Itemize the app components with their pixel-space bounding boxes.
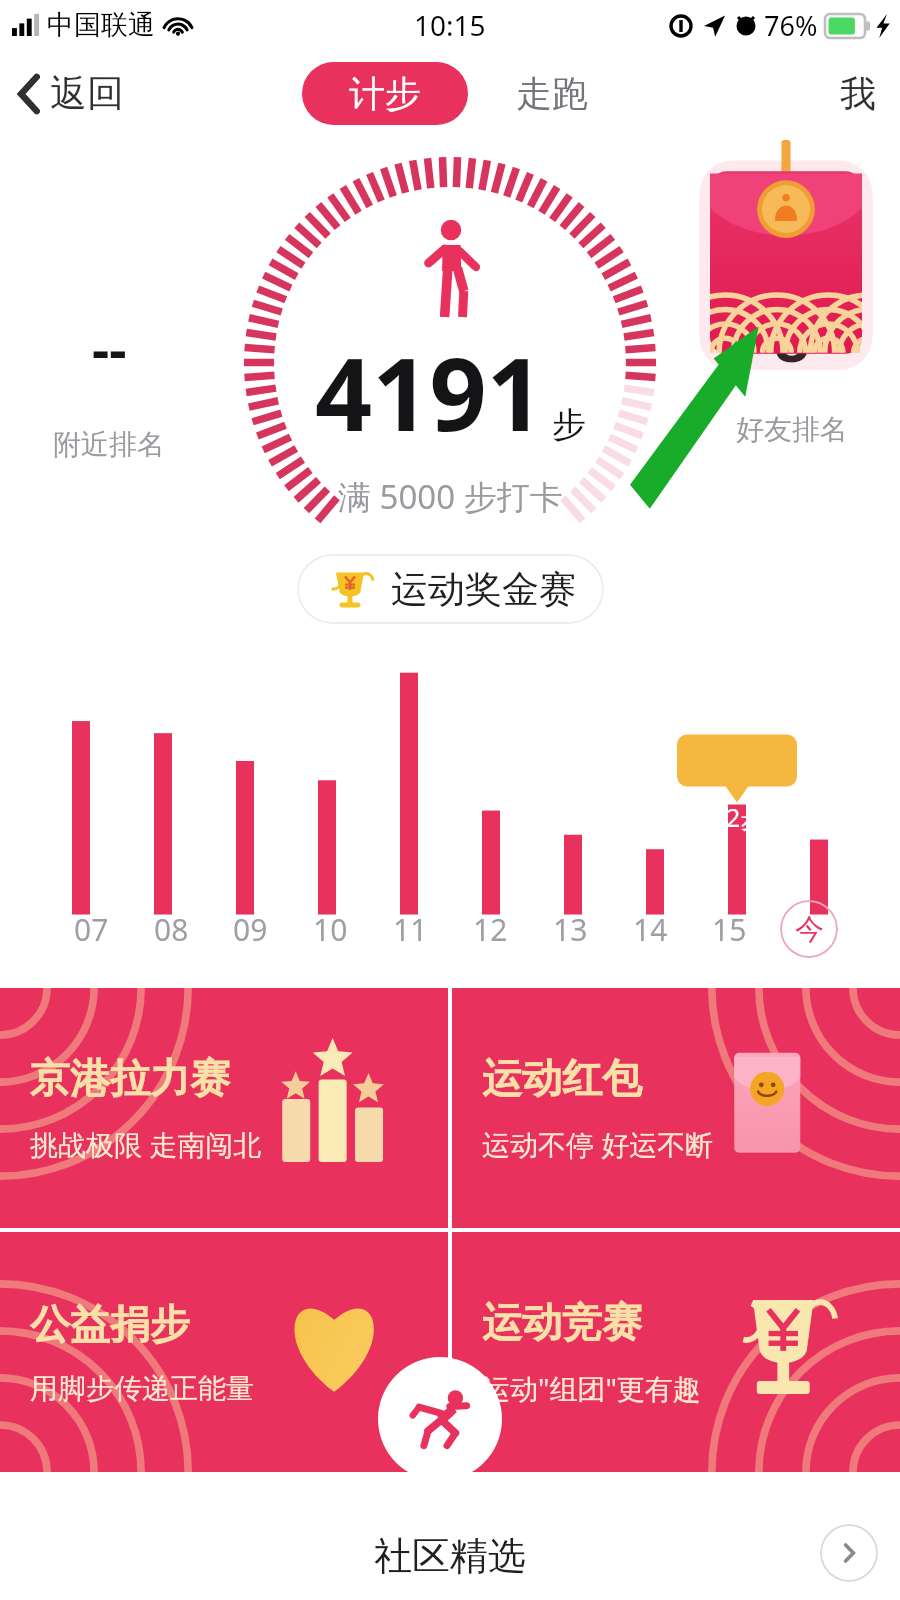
button[interactable]: 8 — [706, 296, 878, 447]
button[interactable]: 13 — [541, 900, 599, 958]
staticText: 用脚步传递正能量 — [30, 1371, 254, 1406]
staticText: 运动不停 好运不断 — [482, 1125, 714, 1163]
button[interactable]: 运动奖金赛 — [297, 554, 604, 624]
button[interactable]: 计步 — [302, 62, 468, 125]
staticText: 附近排名 — [53, 427, 165, 462]
staticText: 中国联通 — [47, 8, 155, 42]
staticText: 8 — [774, 296, 810, 380]
staticText: 14 — [633, 909, 668, 950]
button[interactable]: 我 — [830, 61, 886, 126]
staticText: 07 — [74, 909, 109, 950]
staticText: 4191 — [315, 324, 544, 460]
button[interactable]: 11 — [381, 900, 439, 958]
staticText: 社区精选 — [374, 1532, 526, 1580]
staticText: 10 — [313, 909, 348, 950]
staticText: 挑战极限 走南闯北 — [30, 1125, 262, 1163]
button[interactable]: 14 — [621, 900, 679, 958]
button[interactable]: 京港拉力赛 — [0, 988, 448, 1228]
staticText: 步 — [552, 403, 586, 446]
staticText: 09 — [233, 909, 268, 950]
staticText: 计步 — [349, 71, 421, 116]
staticText: 我 — [840, 71, 876, 116]
staticText: 运动奖金赛 — [391, 566, 576, 613]
staticText: 今 — [795, 911, 824, 948]
button[interactable]: Red packet reward — [710, 140, 862, 356]
staticText: 满 5000 步打卡 — [338, 474, 563, 519]
button[interactable]: 09 — [221, 900, 279, 958]
button[interactable]: 运动红包 — [452, 988, 900, 1228]
staticText: 返回 — [50, 70, 124, 117]
staticText: 走跑 — [516, 71, 588, 116]
button[interactable]: 15 — [700, 900, 758, 958]
staticText: 12 — [473, 909, 508, 950]
button[interactable]: 12 — [461, 900, 519, 958]
staticText: -- — [92, 311, 127, 385]
staticText: 11 — [393, 909, 428, 950]
button[interactable]: 07 — [62, 900, 120, 958]
staticText: 好友排名 — [736, 412, 848, 447]
staticText: 6672步 — [683, 800, 766, 834]
staticText: 公益捐步 — [30, 1299, 190, 1349]
staticText: 15 — [712, 909, 747, 950]
staticText: 08 — [154, 909, 189, 950]
button[interactable]: 走跑 — [506, 61, 598, 126]
staticText: 京港拉力赛 — [30, 1053, 230, 1103]
button[interactable]: 运动竞赛 — [452, 1232, 900, 1472]
staticText: 13 — [553, 909, 588, 950]
staticText: 10:15 — [414, 6, 486, 44]
button[interactable]: More community — [820, 1524, 878, 1582]
staticText: 运动竞赛 — [482, 1297, 642, 1347]
staticText: 运动"组团"更有趣 — [482, 1369, 701, 1407]
button[interactable]: 08 — [142, 900, 200, 958]
button[interactable]: 今 — [780, 900, 838, 958]
button[interactable]: -- — [25, 311, 193, 462]
button[interactable]: 返回 — [10, 64, 132, 123]
staticText: 76% — [764, 7, 818, 44]
staticText: 运动红包 — [482, 1053, 642, 1103]
button[interactable]: Start running — [378, 1357, 502, 1481]
button[interactable]: 10 — [301, 900, 359, 958]
button[interactable]: 公益捐步 — [0, 1232, 448, 1472]
